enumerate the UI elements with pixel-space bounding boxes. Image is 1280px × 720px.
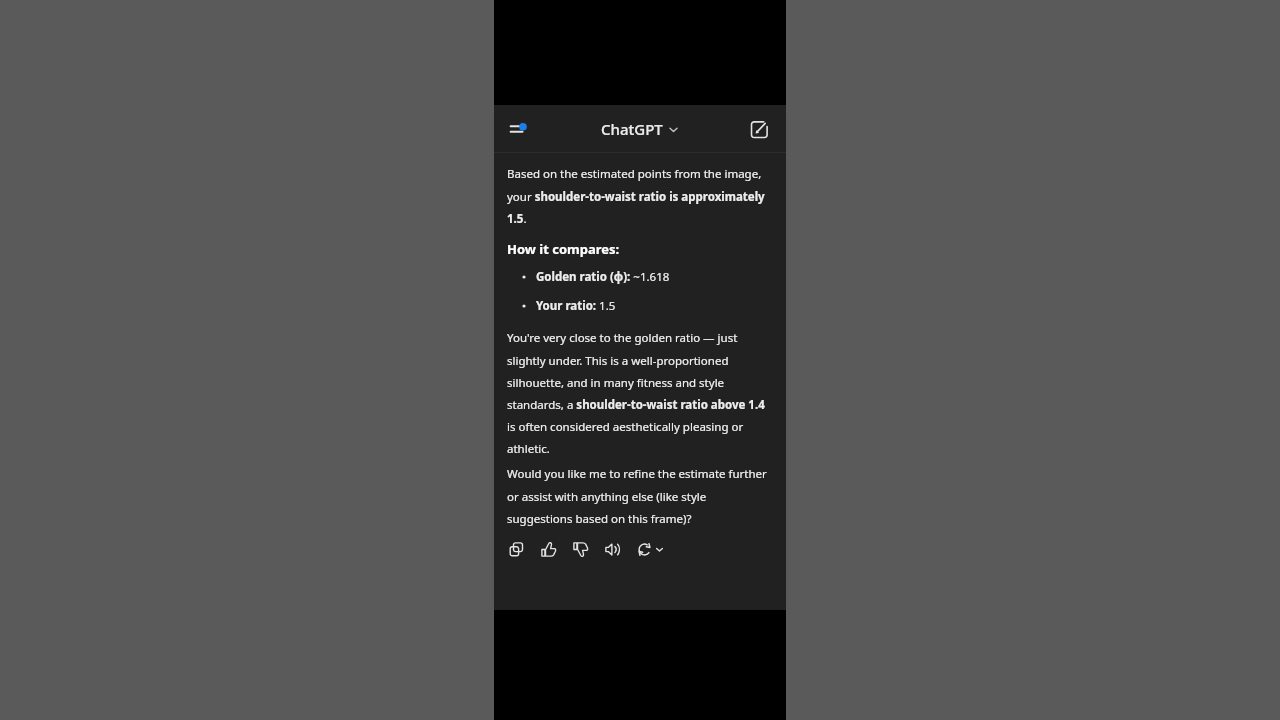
staticText: You're very close to the golden ratio — …	[507, 330, 772, 456]
staticText: ChatGPT	[601, 119, 663, 139]
button[interactable]: ChatGPT	[595, 115, 685, 143]
staticText: Golden ratio (φ): ~1.618	[536, 269, 670, 285]
staticText: Based on the estimated points from the i…	[507, 166, 772, 226]
button[interactable]: Bad response	[571, 540, 590, 559]
staticText: Your ratio: 1.5	[536, 298, 616, 314]
button[interactable]: Good response	[539, 540, 558, 559]
staticText: Would you like me to refine the estimate…	[507, 466, 772, 526]
button[interactable]: Regenerate	[635, 540, 666, 559]
button[interactable]: New chat	[743, 113, 775, 145]
staticText: How it compares:	[507, 240, 620, 258]
button[interactable]: Open sidebar	[503, 113, 535, 145]
button[interactable]: Copy	[507, 540, 526, 559]
button[interactable]: Read aloud	[603, 540, 622, 559]
